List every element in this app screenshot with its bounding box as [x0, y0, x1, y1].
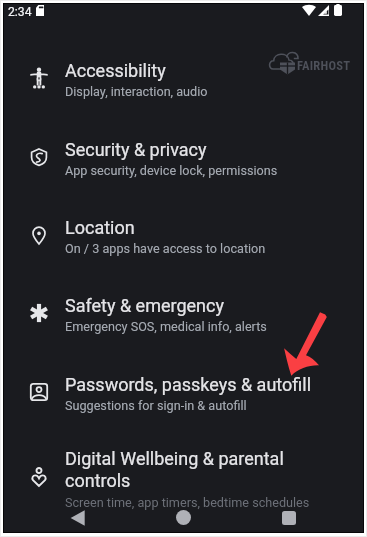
- staticText: Screen time, app timers, bedtime schedul…: [65, 495, 310, 510]
- staticText: 2:34: [8, 5, 32, 19]
- staticText: Display, interaction, audio: [65, 84, 208, 99]
- button[interactable]: Location: [4, 199, 363, 275]
- staticText: FAIRHOST: [297, 58, 351, 73]
- button[interactable]: Recents: [270, 503, 308, 532]
- button[interactable]: Passwords, passkeys & autofill: [4, 356, 363, 432]
- staticText: Location: [65, 217, 135, 238]
- staticText: Emergency SOS, medical info, alerts: [65, 319, 267, 334]
- button[interactable]: Back: [58, 503, 96, 532]
- button[interactable]: Digital Wellbeing & parental controls: [4, 430, 363, 528]
- button[interactable]: Accessibility: [4, 42, 363, 118]
- staticText: Safety & emergency: [65, 295, 224, 316]
- button[interactable]: Safety & emergency: [4, 277, 363, 353]
- staticText: Passwords, passkeys & autofill: [65, 374, 312, 395]
- staticText: Accessibility: [65, 60, 166, 81]
- button[interactable]: Security & privacy: [4, 121, 363, 197]
- staticText: On / 3 apps have access to location: [65, 241, 266, 256]
- staticText: Digital Wellbeing & parental controls: [65, 448, 347, 492]
- staticText: Security & privacy: [65, 139, 207, 160]
- staticText: App security, device lock, permissions: [65, 163, 278, 178]
- button[interactable]: Home: [164, 503, 202, 532]
- staticText: Suggestions for sign-in & autofill: [65, 398, 247, 413]
